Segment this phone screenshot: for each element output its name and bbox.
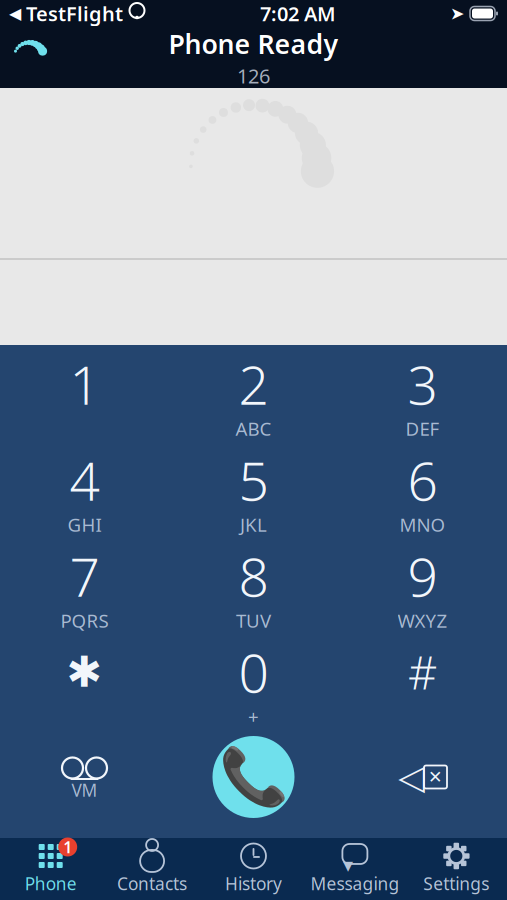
- staticText: +: [248, 704, 259, 729]
- staticText: 126: [237, 62, 270, 89]
- staticText: 📞: [218, 745, 288, 809]
- staticText: TestFlight: [21, 0, 128, 27]
- staticText: PQRS: [60, 608, 108, 633]
- button[interactable]: 1: [0, 838, 101, 900]
- staticText: DEF: [405, 416, 439, 441]
- staticText: ➤: [450, 4, 465, 23]
- button[interactable]: 9: [338, 537, 507, 633]
- staticText: ✕: [428, 767, 443, 787]
- staticText: 8: [238, 541, 268, 611]
- staticText: ◀: [9, 4, 21, 23]
- staticText: Phone Ready: [168, 26, 338, 61]
- staticText: MNO: [399, 512, 445, 537]
- staticText: TUV: [236, 608, 271, 633]
- staticText: 3: [407, 349, 437, 419]
- staticText: ▾: [343, 854, 353, 876]
- staticText: Settings: [423, 872, 489, 895]
- button[interactable]: 6: [338, 441, 507, 537]
- staticText: 9: [407, 541, 437, 611]
- button[interactable]: 5: [169, 441, 338, 537]
- staticText: ✱: [66, 648, 102, 696]
- button[interactable]: History: [203, 838, 304, 900]
- staticText: Messaging: [310, 872, 399, 895]
- staticText: [465, 2, 470, 25]
- button[interactable]: 7: [0, 537, 169, 633]
- staticText: 1: [63, 836, 72, 858]
- staticText: 7:02 AM: [260, 0, 336, 27]
- button[interactable]: Backspace: [338, 729, 507, 825]
- staticText: 7: [69, 541, 99, 611]
- staticText: WXYZ: [397, 608, 447, 633]
- staticText: 4: [69, 445, 99, 515]
- button[interactable]: Settings: [406, 838, 507, 900]
- staticText: 6: [407, 445, 437, 515]
- button[interactable]: Call: [169, 729, 338, 825]
- button[interactable]: #: [338, 633, 507, 729]
- staticText: History: [225, 872, 282, 895]
- button[interactable]: 3: [338, 345, 507, 441]
- staticText: 2: [238, 349, 268, 419]
- staticText: VM: [71, 778, 97, 801]
- button[interactable]: ✱: [0, 633, 169, 729]
- button[interactable]: 2: [169, 345, 338, 441]
- staticText: 1: [69, 349, 99, 419]
- button[interactable]: 4: [0, 441, 169, 537]
- staticText: JKL: [240, 512, 267, 537]
- staticText: Contacts: [117, 872, 187, 895]
- staticText: Phone: [25, 872, 77, 895]
- button[interactable]: ▾: [304, 838, 406, 900]
- button[interactable]: 1: [0, 345, 169, 441]
- staticText: ABC: [235, 416, 271, 441]
- button[interactable]: 8: [169, 537, 338, 633]
- staticText: GHI: [67, 512, 101, 537]
- staticText: ◁: [398, 757, 425, 797]
- staticText: 5: [238, 445, 268, 515]
- staticText: #: [408, 642, 437, 702]
- button[interactable]: Voicemail: [0, 729, 169, 825]
- staticText: 0: [238, 637, 268, 707]
- button[interactable]: Contacts: [101, 838, 203, 900]
- button[interactable]: 0: [169, 633, 338, 729]
